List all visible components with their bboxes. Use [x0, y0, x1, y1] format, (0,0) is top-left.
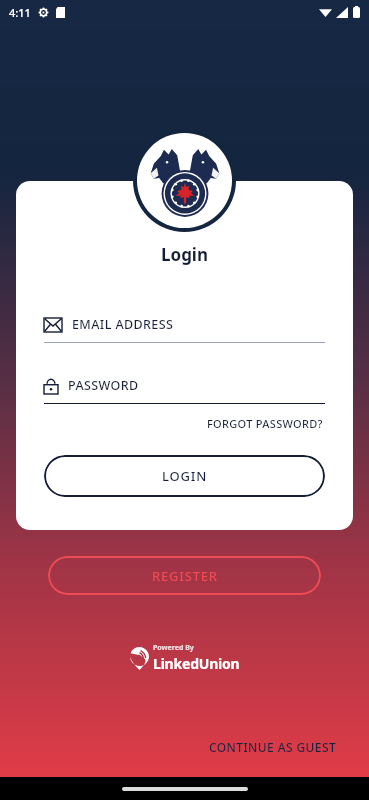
- other: Password: [44, 378, 58, 394]
- button[interactable]: LOGIN: [44, 455, 325, 497]
- staticText: CONTINUE AS GUEST: [209, 739, 337, 755]
- button[interactable]: FORGOT PASSWORD?: [205, 414, 325, 433]
- staticText: 4:11: [9, 5, 31, 20]
- button[interactable]: Email: [44, 316, 325, 333]
- staticText: LinkedUnion: [153, 654, 240, 673]
- staticText: LOGIN: [162, 467, 208, 485]
- staticText: REGISTER: [152, 567, 218, 585]
- staticText: Powered By: [153, 643, 194, 653]
- button[interactable]: CONTINUE AS GUEST: [205, 735, 341, 759]
- button[interactable]: Password: [44, 377, 325, 394]
- staticText: FORGOT PASSWORD?: [207, 416, 323, 431]
- staticText: EMAIL ADDRESS: [72, 316, 174, 333]
- other: Email: [44, 318, 62, 332]
- button[interactable]: REGISTER: [48, 556, 321, 595]
- staticText: PASSWORD: [68, 377, 139, 394]
- staticText: Login: [161, 243, 209, 266]
